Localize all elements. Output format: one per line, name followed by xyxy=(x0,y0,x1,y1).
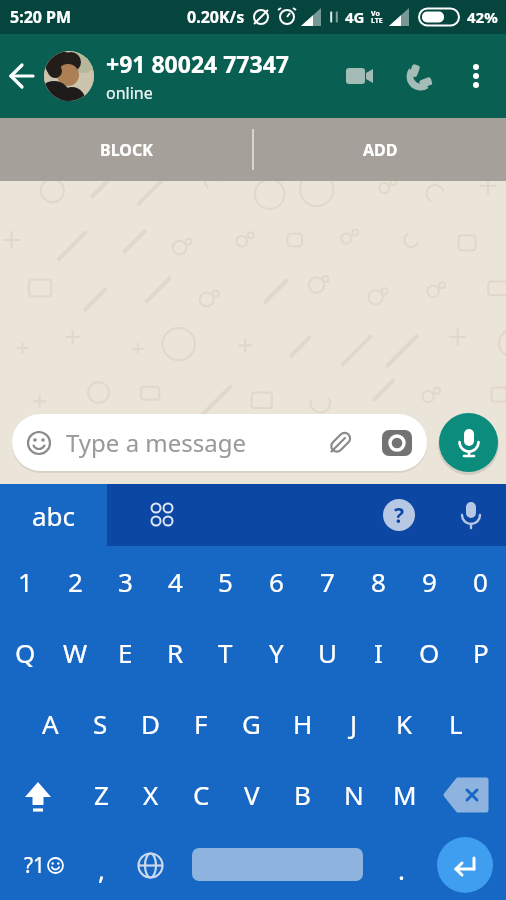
button[interactable]: ? xyxy=(377,484,421,546)
button[interactable]: 6 xyxy=(251,546,302,617)
button[interactable]: BLOCK xyxy=(0,118,252,181)
staticText: B xyxy=(294,777,311,812)
staticText: O xyxy=(419,635,440,670)
button[interactable]: +91 80024 77347 xyxy=(106,48,334,104)
button[interactable]: A xyxy=(25,688,75,759)
button[interactable]: ADD xyxy=(254,118,506,181)
button[interactable] xyxy=(131,846,169,884)
staticText: C xyxy=(193,777,210,812)
staticText: ADD xyxy=(363,139,398,161)
button[interactable]: I xyxy=(353,617,404,688)
button[interactable]: 9 xyxy=(404,546,455,617)
staticText: 0 xyxy=(473,564,488,599)
staticText: 9 xyxy=(422,564,437,599)
staticText: 3 xyxy=(118,564,133,599)
button[interactable]: Z xyxy=(76,759,126,830)
staticText: 7 xyxy=(320,564,335,599)
staticText: W xyxy=(63,635,88,670)
button[interactable]: Type a message xyxy=(12,414,427,471)
button[interactable] xyxy=(437,837,493,893)
button[interactable]: O xyxy=(404,617,455,688)
staticText: T xyxy=(218,635,233,670)
button[interactable]: T xyxy=(200,617,251,688)
staticText: Z xyxy=(94,777,109,812)
button[interactable]: 7 xyxy=(302,546,353,617)
staticText: 8 xyxy=(371,564,386,599)
button[interactable]: J xyxy=(328,688,379,759)
button[interactable]: B xyxy=(277,759,328,830)
button[interactable]: 2 xyxy=(50,546,100,617)
staticText: H xyxy=(293,706,313,741)
button[interactable]: 4 xyxy=(150,546,200,617)
staticText: 1 xyxy=(18,564,33,599)
button[interactable]: K xyxy=(379,688,430,759)
staticText: 6 xyxy=(269,564,284,599)
button[interactable]: W xyxy=(50,617,100,688)
staticText: 42% xyxy=(467,7,498,27)
staticText: J xyxy=(350,706,358,741)
staticText: Vo LTE xyxy=(371,9,383,26)
button[interactable]: X xyxy=(126,759,176,830)
button[interactable]: 8 xyxy=(353,546,404,617)
button[interactable]: P xyxy=(455,617,506,688)
staticText: K xyxy=(396,706,413,741)
button[interactable]: ?1 xyxy=(24,851,65,880)
button[interactable]: R xyxy=(150,617,200,688)
staticText: D xyxy=(141,706,160,741)
button[interactable]: 1 xyxy=(0,546,50,617)
staticText: V xyxy=(244,777,260,812)
staticText: F xyxy=(194,706,208,741)
staticText: ? xyxy=(394,501,405,530)
button[interactable] xyxy=(446,34,506,118)
button[interactable]: S xyxy=(75,688,125,759)
staticText: abc xyxy=(32,498,76,533)
button[interactable]: 5 xyxy=(200,546,251,617)
button[interactable]: abc xyxy=(0,484,107,546)
button[interactable]: Q xyxy=(0,617,50,688)
button[interactable]: L xyxy=(430,688,481,759)
staticText: 4 xyxy=(168,564,183,599)
button[interactable]: 3 xyxy=(100,546,150,617)
staticText: Q xyxy=(15,635,36,670)
button[interactable] xyxy=(430,759,506,830)
button[interactable]: F xyxy=(175,688,226,759)
staticText: P xyxy=(473,635,489,670)
button[interactable]: V xyxy=(226,759,277,830)
staticText: A xyxy=(42,706,59,741)
button[interactable]: D xyxy=(125,688,175,759)
staticText: Y xyxy=(269,635,284,670)
staticText: M xyxy=(393,777,417,812)
staticText: Type a message xyxy=(66,426,247,459)
staticText: online xyxy=(106,82,153,104)
staticText: 5 xyxy=(218,564,233,599)
button[interactable] xyxy=(449,484,493,546)
staticText: 0.20K/s xyxy=(187,6,245,28)
staticText: ?1 xyxy=(24,851,46,880)
button[interactable]: M xyxy=(379,759,430,830)
button[interactable]: G xyxy=(226,688,277,759)
button[interactable]: U xyxy=(302,617,353,688)
staticText: R xyxy=(167,635,184,670)
button[interactable] xyxy=(0,759,76,830)
staticText: I xyxy=(374,635,383,670)
button[interactable] xyxy=(0,34,44,118)
staticText: BLOCK xyxy=(100,139,153,161)
staticText: 5:20 PM xyxy=(10,6,72,28)
button[interactable] xyxy=(334,34,386,118)
button[interactable] xyxy=(44,51,94,101)
button[interactable]: N xyxy=(328,759,379,830)
button[interactable]: H xyxy=(277,688,328,759)
button[interactable]: E xyxy=(100,617,150,688)
button[interactable] xyxy=(192,848,363,881)
button[interactable] xyxy=(107,484,217,546)
staticText: +91 80024 77347 xyxy=(106,48,289,79)
button[interactable]: C xyxy=(176,759,226,830)
staticText: , xyxy=(98,852,105,887)
button[interactable] xyxy=(439,413,498,472)
button[interactable]: 0 xyxy=(455,546,506,617)
button[interactable] xyxy=(394,34,446,118)
staticText: G xyxy=(242,706,261,741)
staticText: U xyxy=(318,635,338,670)
staticText: 2 xyxy=(68,564,83,599)
button[interactable]: Y xyxy=(251,617,302,688)
